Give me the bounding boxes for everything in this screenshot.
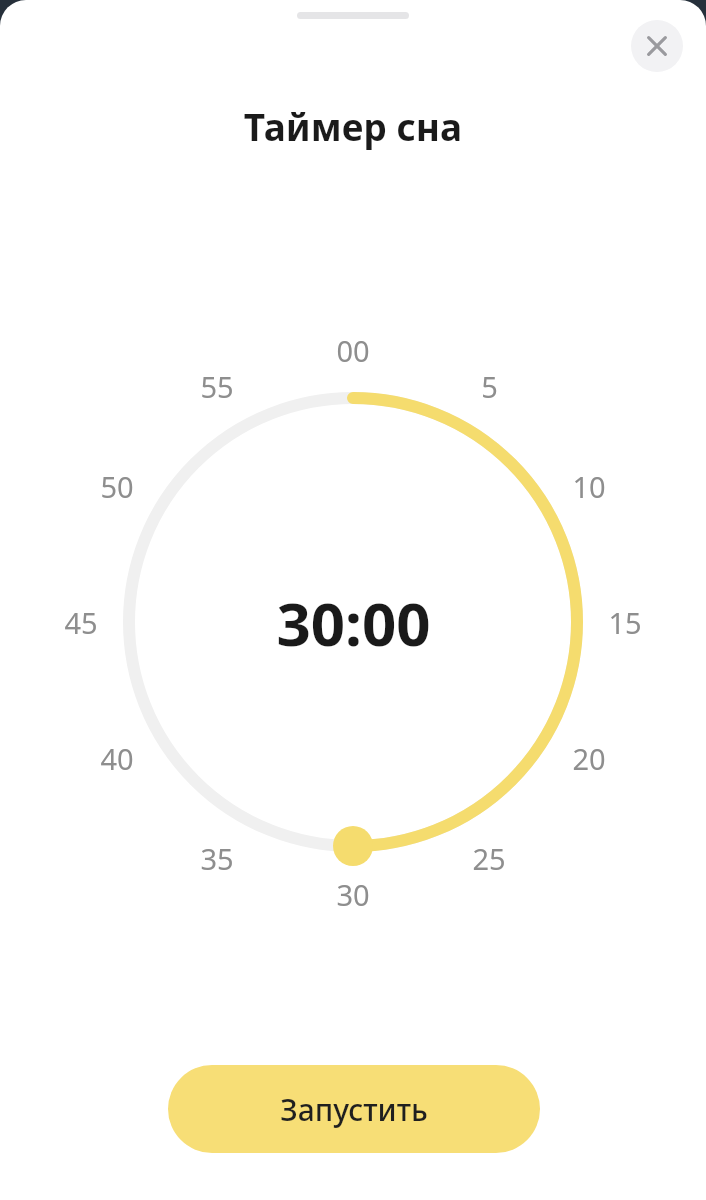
staticText: 20 — [572, 739, 606, 778]
staticText: 50 — [100, 467, 134, 506]
staticText: 35 — [200, 839, 234, 878]
button[interactable]: Закрыть — [631, 20, 683, 72]
staticText: 5 — [481, 367, 498, 406]
staticText: 30:00 — [276, 582, 431, 662]
staticText: 00 — [336, 331, 370, 370]
staticText: Таймер сна — [0, 101, 706, 151]
button[interactable]: Запустить — [168, 1065, 540, 1153]
staticText: Запустить — [280, 1089, 428, 1130]
staticText: 15 — [608, 603, 642, 642]
staticText: 25 — [472, 839, 506, 878]
button[interactable]: Выбор времени таймера — [0, 0, 706, 1200]
staticText: 40 — [100, 739, 134, 778]
staticText: 45 — [64, 603, 98, 642]
staticText: 55 — [200, 367, 234, 406]
staticText: 10 — [572, 467, 606, 506]
staticText: 30 — [336, 875, 370, 914]
